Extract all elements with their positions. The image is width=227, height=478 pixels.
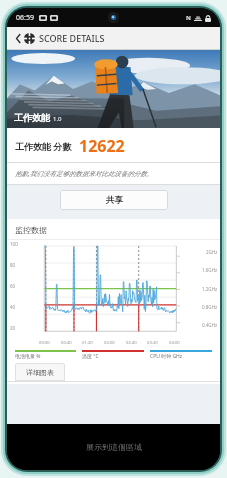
staticText: CPU 时钟 GHz — [150, 353, 183, 360]
staticText: 04:00 — [169, 340, 180, 346]
staticText: 温度 °C — [82, 353, 99, 360]
staticText: 01:20 — [82, 340, 93, 346]
staticText: 展示到這個區域 — [86, 442, 142, 452]
staticText: SCORE DETAILS — [39, 32, 105, 44]
staticText: 100 — [10, 241, 18, 247]
staticText: 60 — [10, 283, 16, 289]
staticText: 40 — [10, 304, 16, 310]
button[interactable]: 共享 — [60, 190, 168, 210]
staticText: 2GHz — [206, 249, 218, 255]
staticText: 监控数据 — [15, 225, 47, 235]
staticText: 电池电量 % — [15, 353, 41, 360]
staticText: 03:20 — [147, 340, 158, 346]
staticText: 02:40 — [126, 340, 137, 346]
staticText: 1.2GHz — [202, 286, 218, 292]
staticText: 共享 — [106, 195, 123, 206]
staticText: 00:00 — [39, 340, 50, 346]
staticText: 0.4GHz — [202, 322, 218, 328]
staticText: 抱歉,我们没有足够的数据来对比此设备的分数。 — [15, 169, 154, 178]
staticText: 20 — [10, 325, 16, 331]
staticText: N — [186, 14, 191, 22]
staticText: 00:40 — [61, 340, 72, 346]
staticText: 02:00 — [104, 340, 115, 346]
staticText: 1.0 — [53, 115, 62, 123]
button[interactable]: Back — [12, 28, 24, 48]
staticText: 1.6GHz — [202, 267, 218, 273]
staticText: 80 — [10, 262, 16, 268]
staticText: 06:59 — [16, 13, 34, 23]
staticText: 12622 — [79, 135, 125, 157]
staticText: 详细图表 — [26, 368, 54, 377]
staticText: 工作效能 分數 — [15, 140, 72, 152]
button[interactable]: Advertisement — [7, 424, 220, 470]
button[interactable]: 详细图表 — [15, 363, 65, 381]
staticText: 0.8GHz — [202, 304, 218, 310]
staticText: 工作效能 — [14, 112, 50, 123]
